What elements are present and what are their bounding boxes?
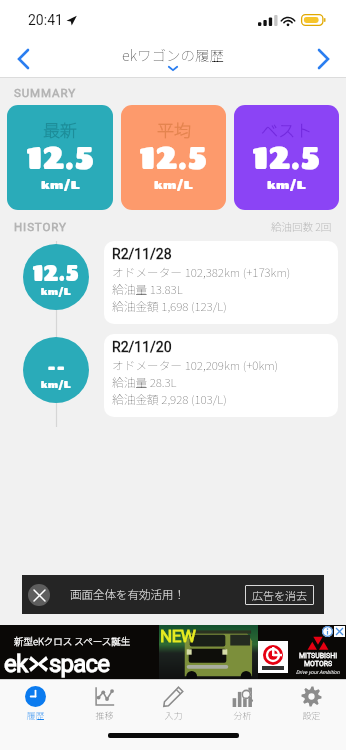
staticText: 給油量 13.83L <box>112 280 183 297</box>
button[interactable]: 設定 <box>277 680 346 727</box>
staticText: km/L <box>154 178 193 191</box>
button[interactable]: ekワゴンの履歴 <box>122 44 224 71</box>
staticText: Drive your Ambition <box>296 669 340 675</box>
staticText: 12.5 <box>252 138 321 176</box>
staticText: 給油金額 2,928 (103/L) <box>112 390 227 407</box>
staticText: 設定 <box>302 709 321 722</box>
button[interactable]: Close ad banner <box>334 626 345 637</box>
staticText: -- <box>47 352 66 379</box>
staticText: 入力 <box>164 709 183 722</box>
staticText: 12.5 <box>139 138 208 176</box>
staticText: NEW <box>160 626 196 646</box>
staticText: 最新 <box>43 117 77 142</box>
staticText: ベスト <box>261 117 313 142</box>
staticText: R2/11/28 <box>112 246 172 262</box>
staticText: 12.5 <box>32 259 80 286</box>
staticText: 広告を消去 <box>252 587 307 603</box>
staticText: MITSUBISHI <box>299 652 338 660</box>
button[interactable]: -- <box>23 337 89 403</box>
staticText: MOTORS <box>304 660 333 668</box>
staticText: オドメーター 102,382km (+173km) <box>112 263 291 280</box>
button[interactable]: Ad info <box>322 626 333 637</box>
staticText: 画面全体を有効活用！ <box>70 586 185 603</box>
button[interactable]: R2/11/20 <box>104 334 338 417</box>
staticText: km/L <box>41 287 71 297</box>
button[interactable]: 最新 <box>7 105 113 210</box>
button[interactable]: 広告を消去 <box>245 585 314 605</box>
button[interactable]: 履歴 <box>0 680 70 727</box>
staticText: SUMMARY <box>14 86 76 99</box>
staticText: km/L <box>41 380 71 390</box>
button[interactable]: ベスト <box>234 105 339 210</box>
button[interactable]: Advertisement <box>0 625 346 679</box>
staticText: 推移 <box>95 709 114 722</box>
staticText: 12.5 <box>26 138 95 176</box>
button[interactable]: R2/11/28 <box>104 241 338 324</box>
button[interactable]: Previous vehicle <box>0 40 46 77</box>
button[interactable]: 推移 <box>70 680 139 727</box>
staticText: R2/11/20 <box>112 339 172 355</box>
staticText: 給油回数 2回 <box>271 219 332 234</box>
button[interactable]: Next vehicle <box>300 40 346 77</box>
staticText: オドメーター 102,209km (+0km) <box>112 356 279 373</box>
staticText: 給油金額 1,698 (123/L) <box>112 297 227 314</box>
staticText: ek <box>4 650 28 678</box>
staticText: 履歴 <box>26 709 45 722</box>
staticText: km/L <box>267 178 306 191</box>
button[interactable]: 12.5 <box>23 244 89 310</box>
staticText: HISTORY <box>14 220 67 233</box>
staticText: 20:41 <box>28 12 63 28</box>
staticText: 分析 <box>233 709 252 722</box>
staticText: km/L <box>41 178 80 191</box>
button[interactable]: 分析 <box>208 680 277 727</box>
button[interactable]: 入力 <box>139 680 208 727</box>
staticText: space <box>49 650 110 678</box>
staticText: 給油量 28.3L <box>112 373 177 390</box>
staticText: 新型eKクロス スペース誕生 <box>14 634 131 648</box>
button[interactable]: 平均 <box>121 105 226 210</box>
button[interactable]: Close ad <box>28 584 50 606</box>
staticText: 平均 <box>157 117 191 142</box>
staticText: ekワゴンの履歴 <box>122 44 224 65</box>
